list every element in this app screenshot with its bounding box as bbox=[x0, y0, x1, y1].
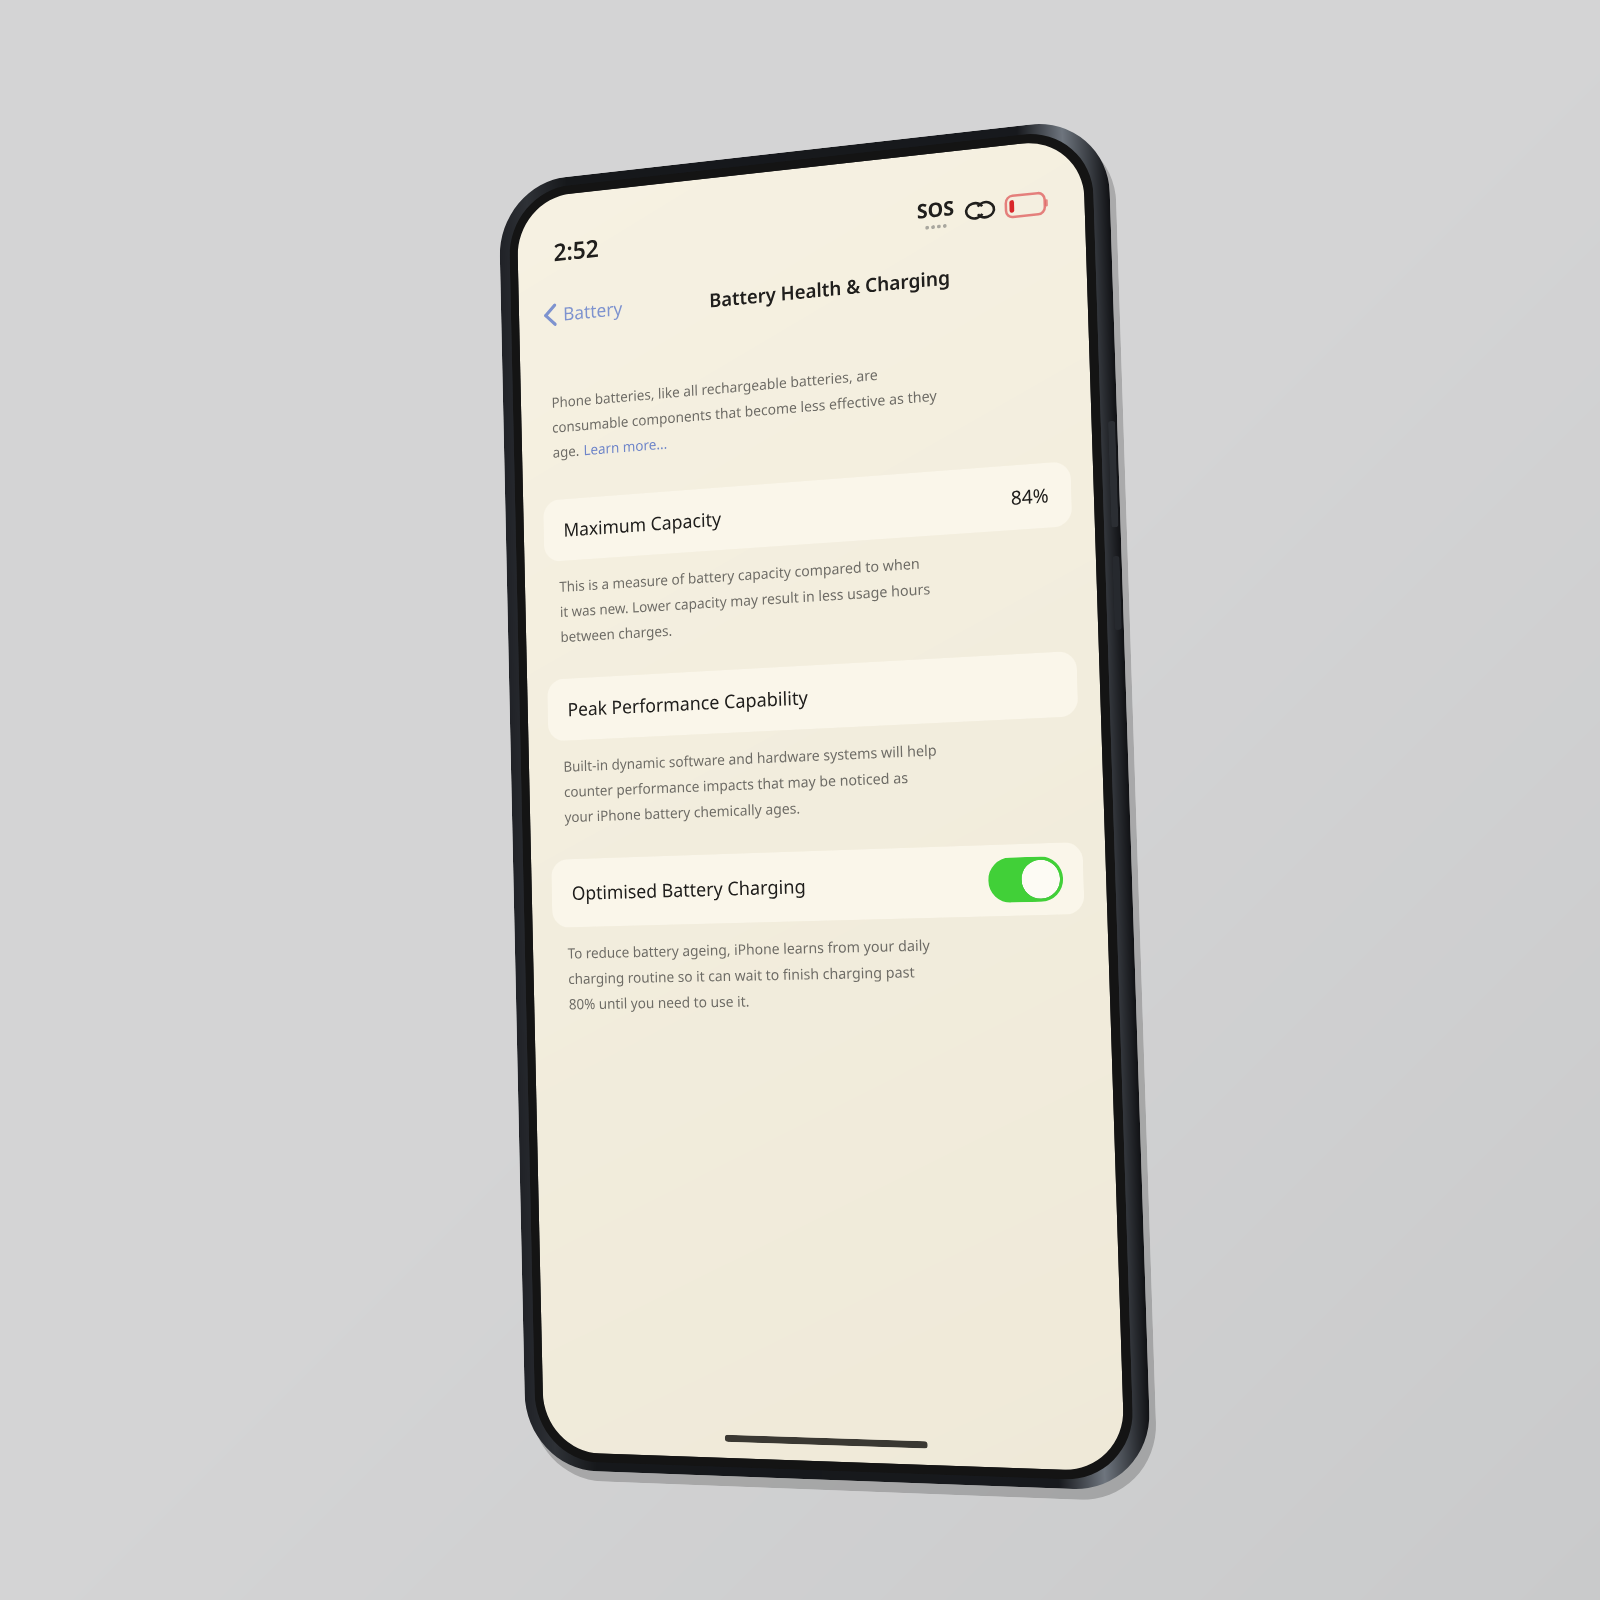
staticText: Built-in dynamic software and hardware s… bbox=[563, 739, 938, 776]
button[interactable]: Maximum Capacity bbox=[543, 461, 1072, 562]
staticText: your iPhone battery chemically ages. bbox=[564, 797, 801, 826]
button[interactable]: Learn more... bbox=[583, 433, 668, 459]
staticText: Peak Performance Capability bbox=[567, 684, 808, 722]
staticText: Optimised Battery Charging bbox=[571, 873, 807, 906]
button[interactable]: Peak Performance Capability bbox=[547, 651, 1078, 741]
staticText: Battery Health & Charging bbox=[709, 263, 951, 313]
staticText: To reduce battery ageing, iPhone learns … bbox=[567, 934, 930, 962]
staticText: between charges. bbox=[560, 620, 673, 646]
staticText: This is a measure of battery capacity co… bbox=[559, 553, 920, 596]
button[interactable]: Optimised Battery Charging bbox=[551, 842, 1085, 928]
staticText: it was new. Lower capacity may result in… bbox=[560, 578, 931, 621]
staticText: 2:52 bbox=[553, 231, 599, 268]
button[interactable]: Back to Battery bbox=[537, 291, 630, 333]
staticText: counter performance impacts that may be … bbox=[564, 767, 909, 801]
staticText: charging routine so it can wait to finis… bbox=[568, 961, 915, 988]
staticText: consumable components that become less e… bbox=[552, 385, 937, 437]
staticText: age. bbox=[552, 440, 584, 462]
staticText: Phone batteries, like all rechargeable b… bbox=[551, 364, 879, 412]
staticText: 84% bbox=[1010, 482, 1049, 511]
staticText: Battery bbox=[563, 296, 623, 326]
staticText: Maximum Capacity bbox=[563, 506, 722, 543]
staticText: SOS bbox=[916, 194, 954, 225]
staticText: Learn more... bbox=[583, 433, 668, 459]
button[interactable]: Optimised Battery Charging, on bbox=[988, 856, 1064, 903]
staticText: 80% until you need to use it. bbox=[569, 990, 750, 1013]
